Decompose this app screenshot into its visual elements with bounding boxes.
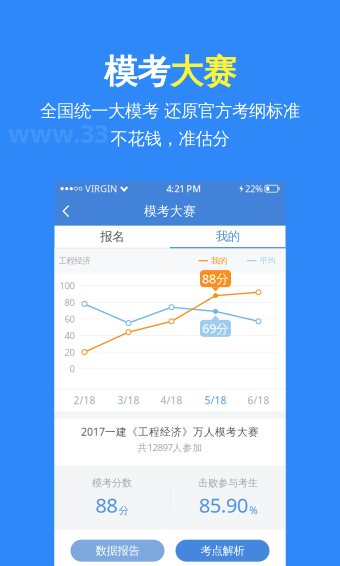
staticText: 工程经济 — [58, 255, 90, 266]
staticText: 报名 — [100, 229, 124, 244]
staticText: 2017一建《工程经济》万人模考大赛 — [81, 424, 259, 439]
staticText: 3/18 — [117, 394, 139, 407]
staticText: 85.90 — [199, 491, 248, 518]
staticText: 模考大赛 — [144, 203, 196, 219]
staticText: 大赛 — [170, 51, 236, 93]
staticText: 22% — [245, 182, 263, 195]
button[interactable]: Back — [54, 199, 77, 223]
staticText: 考点解析 — [200, 543, 244, 558]
staticText: 4:21 PM — [166, 182, 201, 195]
staticText: 88 — [95, 491, 117, 518]
staticText: VIRGIN — [85, 182, 117, 195]
staticText: 4/18 — [160, 394, 182, 407]
staticText: 60 — [64, 312, 74, 325]
staticText: 40 — [64, 329, 74, 342]
staticText: 100 — [59, 279, 74, 292]
button[interactable]: 考点解析 — [175, 540, 269, 562]
staticText: 80 — [64, 296, 74, 309]
button[interactable]: 报名 — [54, 226, 170, 249]
staticText: % — [249, 503, 257, 517]
button[interactable]: 我的 — [170, 226, 285, 249]
staticText: 20 — [64, 346, 74, 358]
staticText: 模考 — [104, 51, 170, 93]
staticText: 分 — [119, 504, 129, 517]
staticText: 69分 — [202, 320, 229, 337]
staticText: 数据报告 — [95, 543, 139, 558]
staticText: 平均 — [259, 255, 275, 266]
staticText: 88分 — [202, 270, 229, 287]
staticText: 5/18 — [204, 394, 226, 407]
staticText: 我的 — [211, 255, 227, 266]
staticText: 模考分数 — [92, 477, 132, 489]
staticText: 0 — [69, 362, 74, 375]
button[interactable]: 数据报告 — [70, 540, 164, 562]
staticText: 2/18 — [73, 394, 95, 407]
staticText: 6/18 — [247, 394, 269, 407]
staticText: 共12897人参加 — [137, 441, 202, 454]
staticText: 不花钱，准估分 — [110, 128, 229, 150]
staticText: 击败参与考生 — [198, 477, 258, 489]
staticText: 我的 — [216, 229, 240, 244]
staticText: 全国统一大模考 还原官方考纲标准 — [40, 100, 300, 122]
staticText: www.33 — [8, 116, 108, 150]
